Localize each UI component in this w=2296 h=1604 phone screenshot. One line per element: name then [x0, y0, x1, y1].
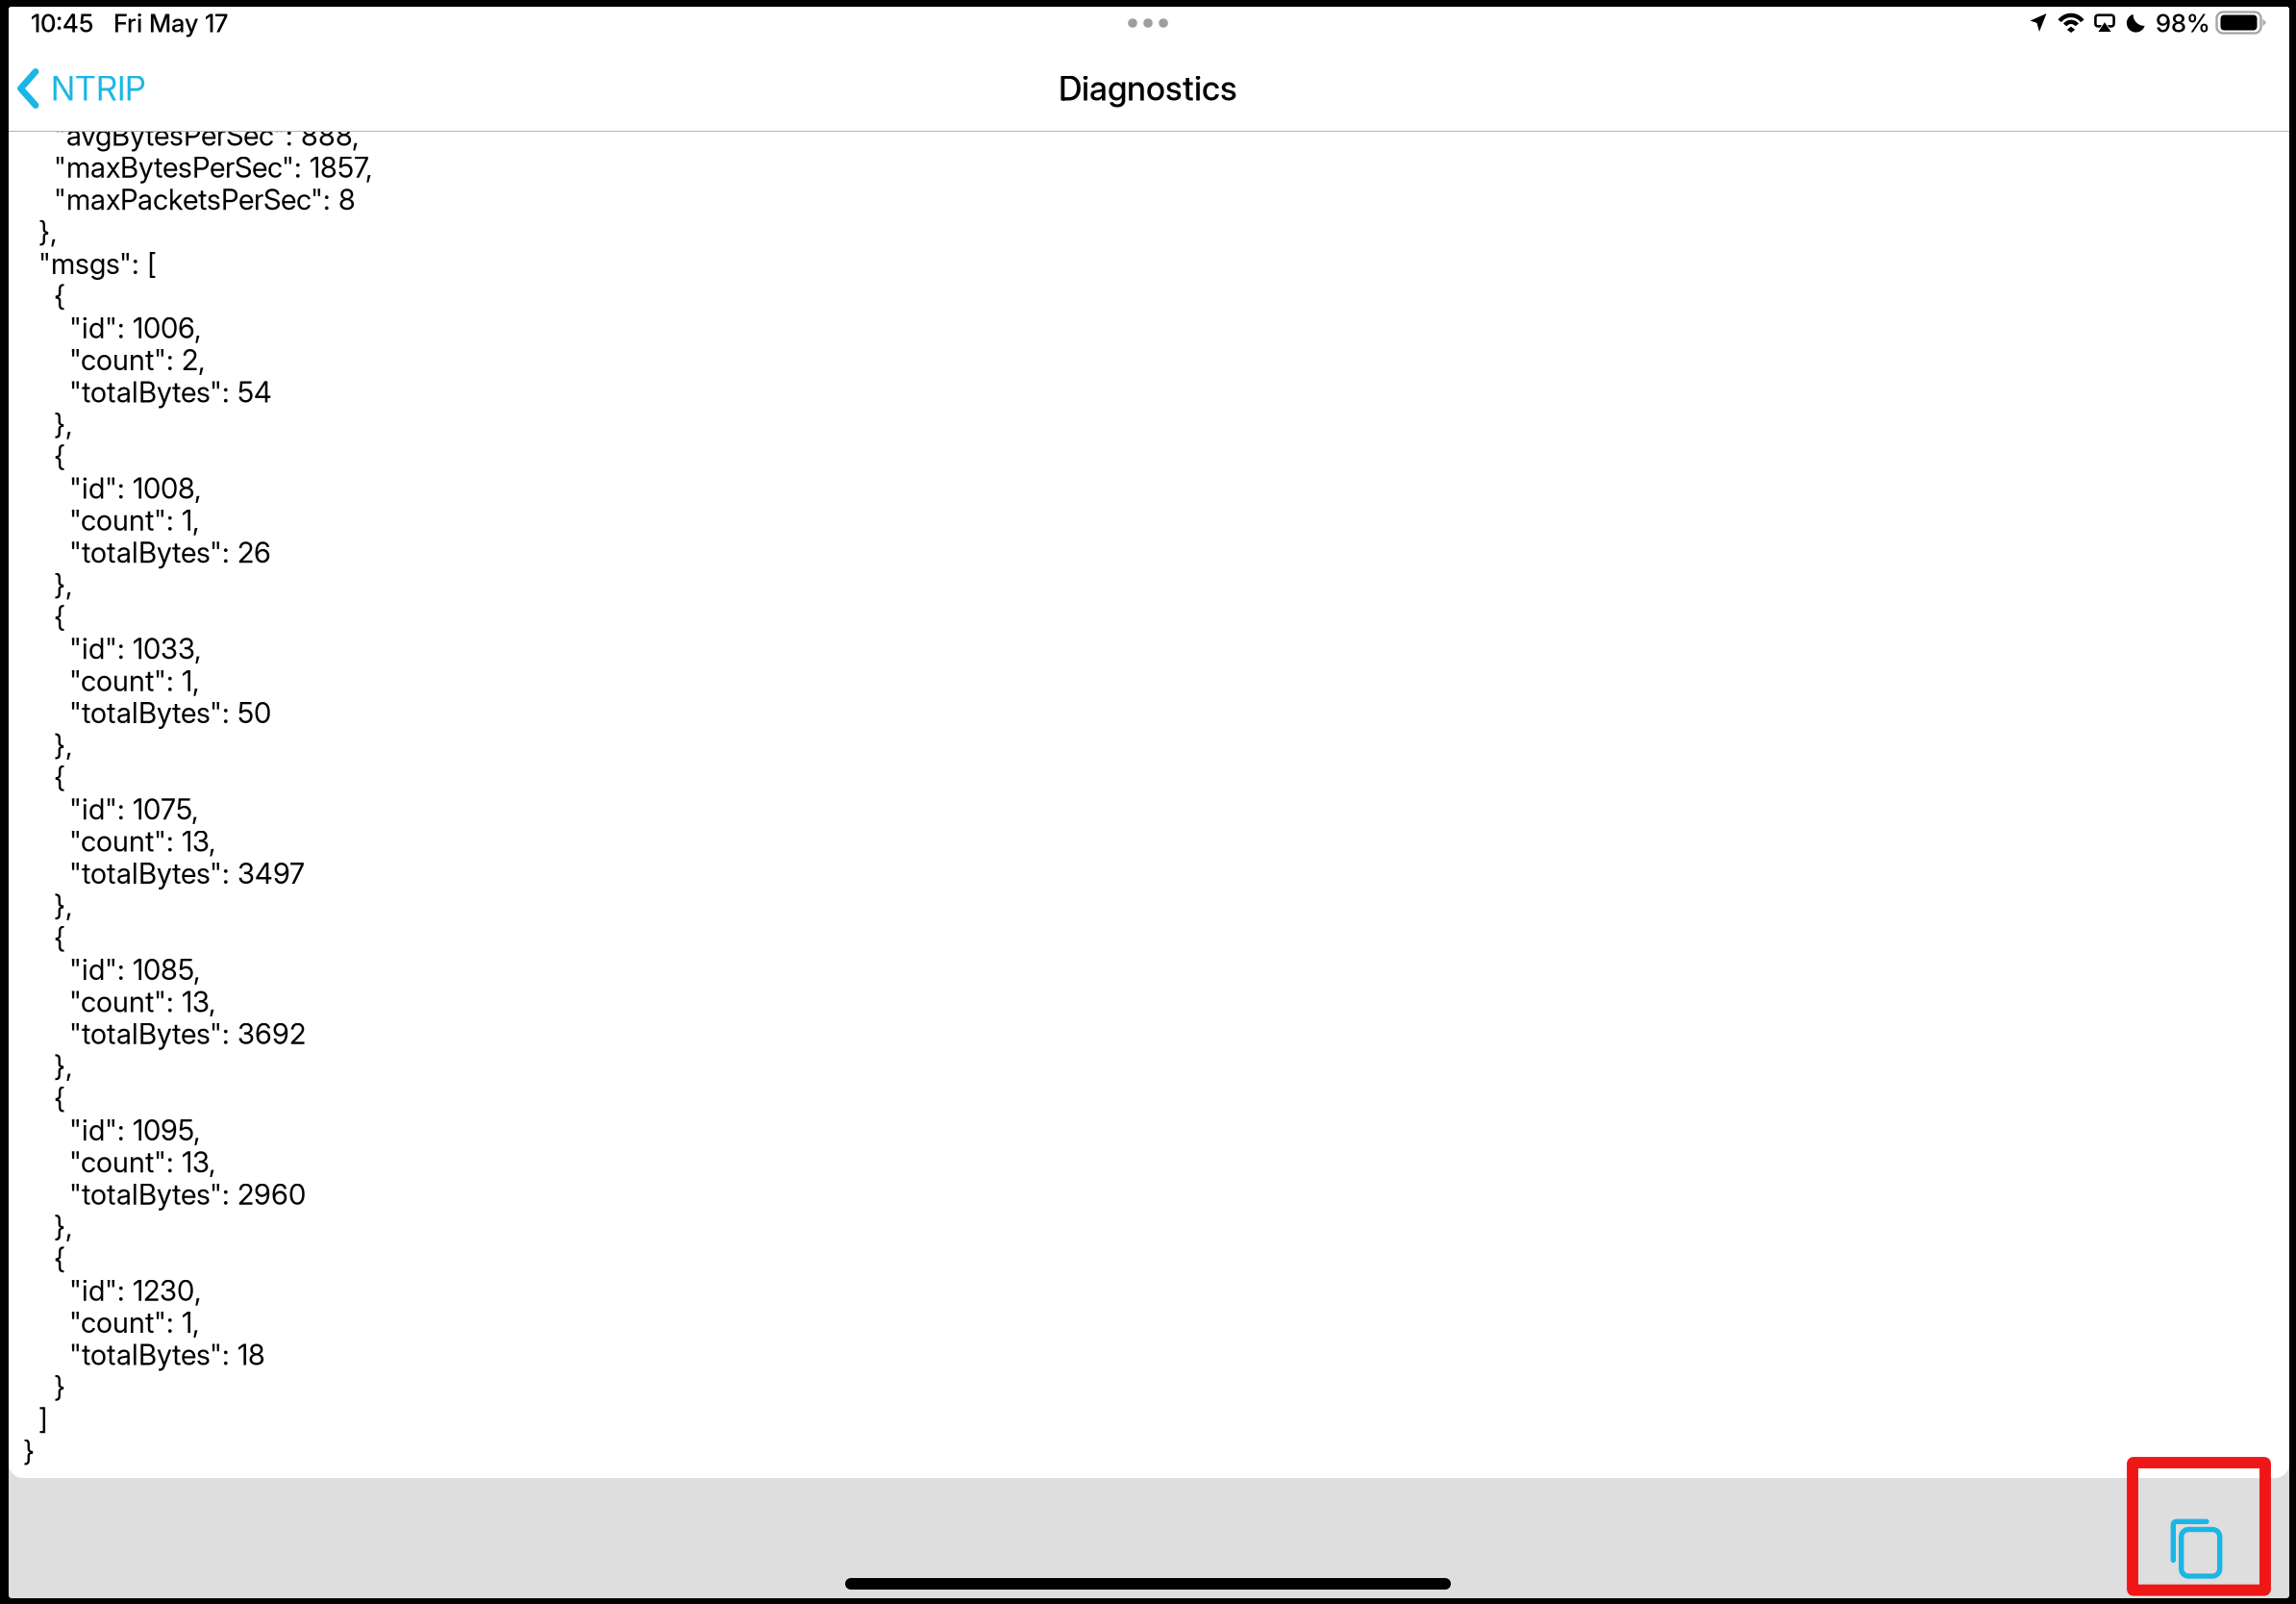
staticText: },	[54, 1049, 73, 1083]
staticText: "id": 1033,	[69, 632, 202, 666]
staticText: "id": 1095,	[69, 1113, 201, 1147]
staticText: "count": 1,	[69, 1306, 200, 1340]
staticText: },	[54, 888, 73, 923]
staticText: "count": 1,	[69, 503, 200, 537]
staticText: Fri May 17	[113, 8, 228, 38]
staticText: ]	[38, 1402, 48, 1436]
staticText: "totalBytes": 3497	[69, 856, 305, 890]
staticText: {	[54, 1081, 65, 1115]
staticText: "totalBytes": 2960	[69, 1177, 306, 1211]
staticText: {	[54, 439, 65, 473]
staticText: "count": 13,	[69, 1145, 216, 1179]
staticText: "id": 1075,	[69, 792, 199, 826]
staticText: "count": 2,	[69, 343, 206, 377]
button[interactable]: Copy	[2147, 1500, 2244, 1596]
staticText: "msgs": [	[38, 247, 157, 281]
staticText: },	[54, 1209, 73, 1243]
staticText: {	[54, 279, 65, 313]
staticText: "id": 1006,	[69, 311, 202, 345]
staticText: "count": 1,	[69, 664, 200, 698]
staticText: "maxBytesPerSec": 1857,	[54, 150, 373, 185]
staticText: "totalBytes": 54	[69, 375, 272, 409]
staticText: 10:45	[31, 8, 93, 38]
staticText: "id": 1008,	[69, 471, 202, 505]
staticText: }	[23, 1434, 35, 1468]
button[interactable]: NTRIP	[9, 46, 316, 131]
staticText: Diagnostics	[1059, 68, 1237, 109]
staticText: {	[54, 600, 65, 634]
staticText: },	[54, 568, 73, 602]
staticText: "id": 1085,	[69, 953, 201, 987]
staticText: "avgBytesPerSec": 888,	[54, 118, 360, 152]
staticText: "count": 13,	[69, 985, 216, 1019]
staticText: "totalBytes": 50	[69, 696, 271, 730]
staticText: },	[54, 407, 73, 441]
staticText: },	[38, 215, 58, 249]
staticText: {	[54, 1241, 65, 1276]
staticText: "id": 1230,	[69, 1273, 202, 1308]
staticText: "totalBytes": 26	[69, 535, 271, 570]
staticText: "maxPacketsPerSec": 8	[54, 182, 356, 217]
staticText: {	[54, 760, 65, 794]
staticText: },	[54, 728, 73, 762]
staticText: "totalBytes": 3692	[69, 1017, 306, 1051]
staticText: NTRIP	[51, 68, 146, 109]
staticText: "count": 13,	[69, 824, 216, 858]
staticText: }	[54, 1370, 65, 1404]
staticText: 98%	[2156, 8, 2210, 38]
staticText: "totalBytes": 18	[69, 1338, 265, 1372]
staticText: {	[54, 920, 65, 955]
